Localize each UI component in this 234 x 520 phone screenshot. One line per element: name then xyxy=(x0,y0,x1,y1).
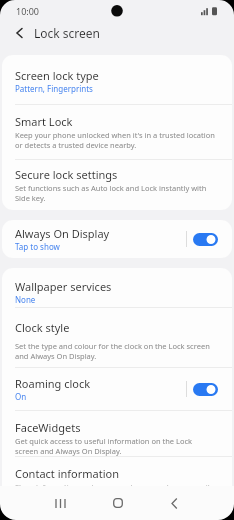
staticText: Set functions such as Auto lock and Lock… xyxy=(15,183,207,203)
staticText: Smart Lock xyxy=(15,114,73,129)
staticText: None xyxy=(15,294,36,305)
staticText: Lock screen xyxy=(34,25,101,41)
staticText: Contact information xyxy=(15,466,119,481)
button[interactable]: Always On Display xyxy=(2,220,232,258)
button[interactable]: Smart Lock xyxy=(2,105,232,159)
staticText: FaceWidgets xyxy=(15,420,81,435)
button[interactable] xyxy=(157,490,191,516)
staticText: On xyxy=(15,391,27,402)
button[interactable]: Screen lock type xyxy=(2,55,232,104)
button[interactable]: Roaming clock xyxy=(2,368,232,410)
button[interactable]: FaceWidgets xyxy=(2,411,232,456)
staticText: Secure lock settings xyxy=(15,167,118,182)
staticText: Screen lock type xyxy=(15,68,99,83)
staticText: Roaming clock xyxy=(15,376,91,391)
button[interactable]: Clock style xyxy=(2,308,232,367)
staticText: Wallpaper services xyxy=(15,279,112,294)
staticText: 10:00 xyxy=(16,5,40,17)
button[interactable]: Contact information xyxy=(2,457,232,520)
button[interactable] xyxy=(43,490,77,516)
button[interactable] xyxy=(193,383,218,396)
staticText: Keep your phone unlocked when it's in a … xyxy=(15,130,215,150)
button[interactable]: Secure lock settings xyxy=(2,160,232,210)
button[interactable] xyxy=(193,233,218,246)
staticText: Show information such as your phone numb… xyxy=(15,482,210,492)
staticText: Get quick access to useful information o… xyxy=(15,436,193,456)
staticText: Always On Display xyxy=(15,226,110,241)
button[interactable]: Wallpaper services xyxy=(2,268,232,307)
button[interactable] xyxy=(0,25,34,41)
staticText: Pattern, Fingerprints xyxy=(15,83,93,94)
staticText: Set the type and colour for the clock on… xyxy=(15,341,210,361)
staticText: Clock style xyxy=(15,320,70,335)
staticText: Tap to show xyxy=(15,241,60,252)
button[interactable] xyxy=(101,490,135,516)
